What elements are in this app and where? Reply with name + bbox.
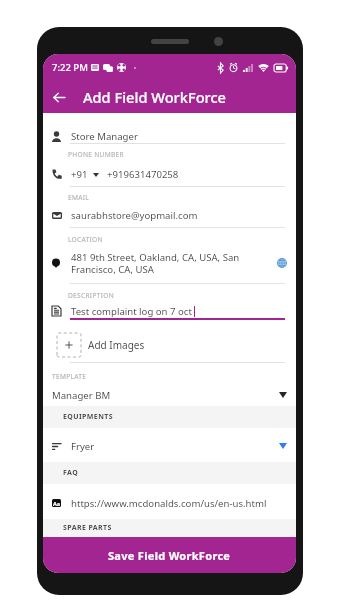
button[interactable]: LOCATION [43,228,296,284]
staticText: saurabhstore@yopmail.com [71,209,198,222]
staticText: EMAIL [68,193,90,202]
staticText: Aa [53,500,61,507]
staticText: PHONE NUMBER [68,150,124,159]
button[interactable]: Save Field WorkForce [43,537,296,573]
button[interactable]: Fryer [43,428,296,462]
staticText: EQUIPMENTS [63,412,113,422]
button[interactable]: TEMPLATE [43,363,296,406]
staticText: Fryer [71,440,95,453]
button[interactable]: Back [46,81,72,113]
button[interactable]: PHONE NUMBER [43,144,296,187]
staticText: TEMPLATE [52,372,87,381]
staticText: Save Field WorkForce [108,548,231,563]
staticText: FAQ [63,468,79,478]
other: Add image [57,333,81,357]
staticText: https://www.mcdonalds.com/us/en-us.html [71,497,267,510]
staticText: +919631470258 [107,168,179,181]
button[interactable]: Add image [57,333,296,357]
button[interactable]: Store Manager [43,113,296,144]
staticText: 7:22 PM [52,61,88,74]
staticText: LOCATION [68,235,103,244]
staticText: DESCRIPTION [68,291,114,300]
button[interactable]: Aa [43,484,296,519]
staticText: SPARE PARTS [63,523,112,533]
staticText: 481 9th Street, Oakland, CA, USA, San Fr… [71,251,273,276]
staticText: Add Images [88,338,145,352]
button[interactable]: EMAIL [43,187,296,228]
staticText: Store Manager [71,130,138,143]
button[interactable]: DESCRIPTION [43,284,296,320]
staticText: Test complaint log on 7 oct [71,305,192,318]
staticText: Manager BM [52,389,111,402]
staticText: +91 [71,168,88,181]
staticText: Add Field WorkForce [83,87,226,107]
